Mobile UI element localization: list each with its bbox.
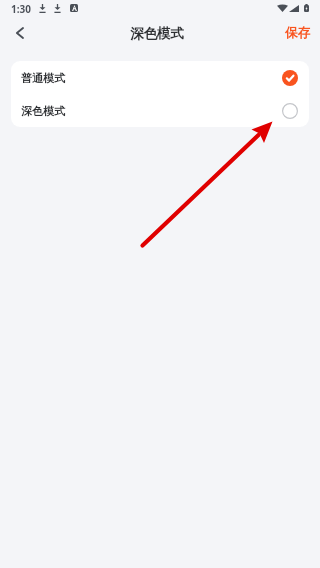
button[interactable]: 深色模式	[11, 94, 309, 127]
staticText: 深色模式	[130, 25, 184, 42]
button[interactable]: 普通模式	[11, 61, 309, 94]
staticText: 1:30	[11, 2, 31, 16]
staticText: 普通模式	[21, 71, 65, 85]
staticText: 保存	[285, 25, 310, 41]
button[interactable]: 保存	[274, 19, 320, 47]
staticText: 深色模式	[21, 104, 65, 118]
button[interactable]: Back	[3, 18, 35, 47]
